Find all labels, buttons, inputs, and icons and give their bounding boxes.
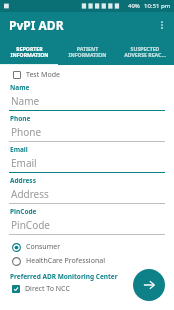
staticText: Consumer (26, 242, 61, 252)
staticText: Test Mode (26, 70, 60, 80)
staticText: PinCode (11, 218, 50, 232)
button[interactable]: Consumer (12, 242, 165, 252)
staticText: PinCode (10, 207, 37, 216)
button[interactable]: Name (9, 83, 165, 114)
button[interactable]: More options (150, 13, 174, 37)
staticText: Email (10, 145, 28, 154)
button[interactable]: Phone (9, 114, 165, 145)
staticText: 10:51 pm (144, 2, 171, 10)
staticText: Name (10, 83, 30, 92)
staticText: Preferred ADR Monitoring Center (10, 272, 118, 281)
button[interactable]: HealthCare Professional (12, 256, 165, 266)
staticText: Name (11, 94, 40, 108)
button[interactable]: SUSPECTED ADVERSE REAC… (116, 38, 174, 65)
staticText: Address (10, 176, 36, 185)
staticText: 49% (128, 2, 140, 10)
button[interactable]: Next (133, 269, 165, 301)
staticText: PATIENT INFORMATION (68, 45, 107, 59)
button[interactable]: PATIENT INFORMATION (58, 38, 116, 65)
staticText: Direct To NCC (25, 284, 70, 294)
staticText: Email (11, 156, 37, 170)
button[interactable]: PinCode (9, 207, 165, 238)
staticText: Phone (11, 125, 42, 139)
staticText: REPORTER INFORMATION (10, 45, 49, 59)
button[interactable]: Direct To NCC (12, 284, 70, 294)
staticText: SUSPECTED ADVERSE REAC… (124, 45, 166, 59)
staticText: HealthCare Professional (26, 256, 105, 266)
staticText: PvPI ADR (9, 17, 64, 33)
staticText: Phone (10, 114, 31, 123)
button[interactable]: REPORTER INFORMATION (0, 38, 58, 65)
staticText: Address (11, 187, 49, 201)
button[interactable]: Address (9, 176, 165, 207)
button[interactable]: Test Mode (13, 70, 60, 80)
button[interactable]: Email (9, 145, 165, 176)
